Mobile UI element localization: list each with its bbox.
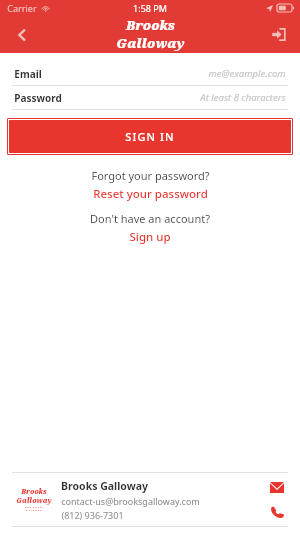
staticText: Carrier <box>7 2 37 14</box>
staticText: Brooks <box>21 487 47 496</box>
staticText: Galloway <box>116 34 185 52</box>
staticText: 1:58 PM <box>133 2 167 14</box>
staticText: (812) 936-7301 <box>61 509 124 521</box>
staticText: & AUCTION <box>26 509 42 512</box>
staticText: Brooks <box>126 16 175 34</box>
staticText: Reset your password <box>93 186 208 202</box>
staticText: REAL ESTATE <box>25 506 43 509</box>
staticText: At least 8 characters <box>200 91 286 104</box>
staticText: Password <box>14 91 62 105</box>
staticText: contact-us@brooksgalloway.com <box>61 495 200 507</box>
staticText: Don't have an account? <box>90 211 210 226</box>
button[interactable]: Email <box>0 62 300 85</box>
staticText: Forgot your password? <box>91 168 210 183</box>
staticText: Galloway <box>16 496 52 505</box>
button[interactable]: Call us <box>266 501 288 523</box>
staticText: Sign up <box>129 229 171 245</box>
staticText: Brooks Galloway <box>61 479 148 493</box>
button[interactable]: Sign up <box>123 228 177 246</box>
button[interactable]: Password <box>0 86 300 109</box>
button[interactable]: Back <box>0 16 44 53</box>
button[interactable]: SIGN IN <box>9 120 291 153</box>
button[interactable]: Reset your password <box>87 185 214 203</box>
button[interactable]: Sign in <box>256 16 300 53</box>
staticText: me@example.com <box>208 67 286 80</box>
staticText: Email <box>14 67 42 81</box>
staticText: SIGN IN <box>125 129 175 144</box>
button[interactable]: Email us <box>266 476 288 498</box>
